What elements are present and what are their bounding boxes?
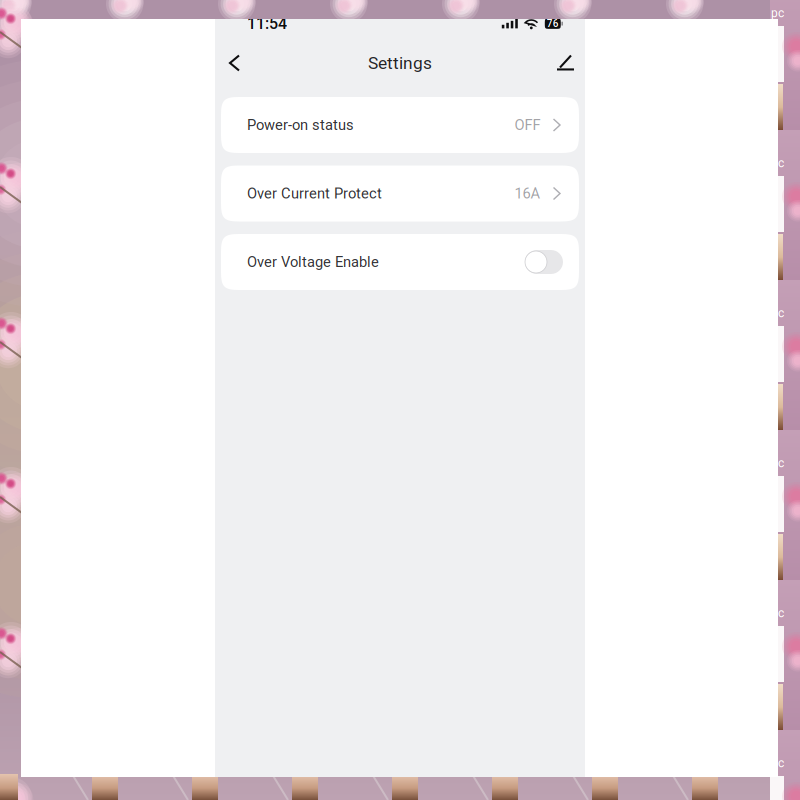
button[interactable]: Back	[215, 44, 255, 81]
staticText: pc	[771, 756, 784, 770]
staticText: pc	[771, 306, 784, 320]
staticText: pc	[771, 6, 784, 20]
staticText: pc	[771, 156, 784, 170]
button[interactable]: Edit	[546, 44, 585, 81]
staticText: 11:54	[247, 14, 287, 33]
button[interactable]: Over Current Protect	[221, 165, 579, 221]
staticText: 76	[547, 18, 559, 29]
staticText: Over Voltage Enable	[247, 253, 379, 271]
staticText: pc	[771, 456, 784, 470]
staticText: Over Current Protect	[247, 185, 382, 202]
staticText: Power-on status	[247, 116, 354, 134]
staticText: pc	[771, 606, 784, 620]
staticText: OFF	[514, 116, 540, 134]
button[interactable]: Over Voltage Enable	[221, 234, 579, 290]
staticText: 16A	[514, 185, 540, 202]
staticText: Settings	[368, 53, 432, 73]
button[interactable]: Power-on status	[221, 97, 579, 153]
